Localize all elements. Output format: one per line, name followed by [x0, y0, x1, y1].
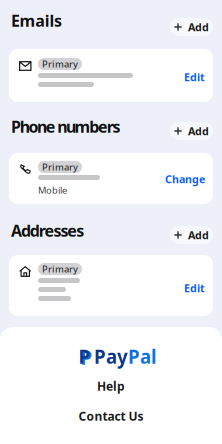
staticText: Primary: [42, 263, 78, 275]
staticText: Emails: [11, 10, 62, 31]
staticText: Add: [188, 228, 209, 242]
staticText: Phone numbers: [11, 116, 120, 137]
staticText: Pal: [128, 344, 157, 369]
button[interactable]: Change: [165, 172, 205, 186]
staticText: Pay: [94, 344, 128, 369]
button[interactable]: Help: [0, 378, 222, 394]
staticText: P: [78, 344, 90, 369]
button[interactable]: Edit: [184, 281, 205, 295]
button[interactable]: Add: [170, 18, 213, 36]
staticText: Contact Us: [78, 408, 143, 424]
button[interactable]: Add: [170, 122, 213, 140]
button[interactable]: Contact Us: [0, 408, 222, 424]
staticText: Add: [188, 20, 209, 34]
staticText: P: [80, 345, 92, 370]
staticText: Edit: [184, 70, 205, 84]
staticText: Mobile: [38, 184, 67, 196]
staticText: Edit: [184, 281, 205, 295]
staticText: Help: [97, 378, 125, 394]
button[interactable]: Add: [170, 226, 213, 244]
staticText: Add: [188, 124, 209, 138]
button[interactable]: Edit: [184, 70, 205, 84]
staticText: Primary: [42, 58, 78, 70]
staticText: Addresses: [11, 220, 84, 241]
staticText: Primary: [42, 161, 78, 173]
staticText: Change: [165, 172, 205, 186]
